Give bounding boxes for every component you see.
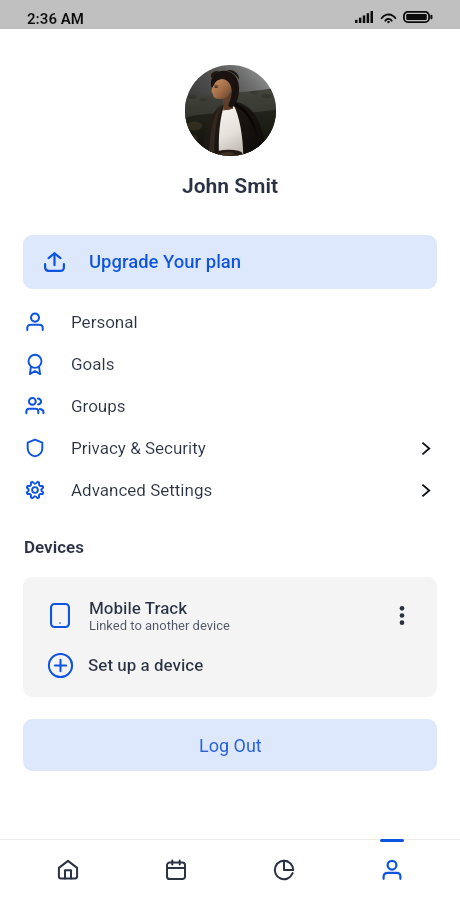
- button[interactable]: Privacy & Security: [0, 427, 460, 469]
- staticText: Set up a device: [88, 655, 204, 675]
- button[interactable]: Log Out: [23, 719, 437, 771]
- button[interactable]: Set up a device: [23, 637, 437, 693]
- button[interactable]: Mobile Track: [23, 577, 437, 653]
- button[interactable]: Personal: [0, 301, 460, 343]
- staticText: Mobile Track: [89, 598, 188, 618]
- staticText: Personal: [71, 312, 138, 332]
- staticText: 2:36 AM: [27, 10, 84, 28]
- staticText: Linked to another device: [89, 618, 230, 633]
- staticText: Log Out: [199, 735, 262, 756]
- button[interactable]: Advanced Settings: [0, 469, 460, 511]
- staticText: Groups: [71, 396, 126, 416]
- staticText: Goals: [71, 354, 115, 374]
- button[interactable]: Groups: [0, 385, 460, 427]
- button[interactable]: More options: [384, 597, 420, 633]
- button[interactable]: Upgrade Your plan: [23, 235, 437, 289]
- staticText: Upgrade Your plan: [89, 251, 242, 273]
- button[interactable]: Statistics: [230, 842, 338, 900]
- button[interactable]: Goals: [0, 343, 460, 385]
- staticText: John Smit: [182, 174, 279, 199]
- button[interactable]: Home: [14, 842, 122, 900]
- button[interactable]: Calendar: [122, 842, 230, 900]
- staticText: Advanced Settings: [71, 480, 213, 500]
- staticText: Privacy & Security: [71, 438, 206, 458]
- button[interactable]: Profile: [338, 842, 446, 900]
- staticText: Devices: [24, 537, 84, 557]
